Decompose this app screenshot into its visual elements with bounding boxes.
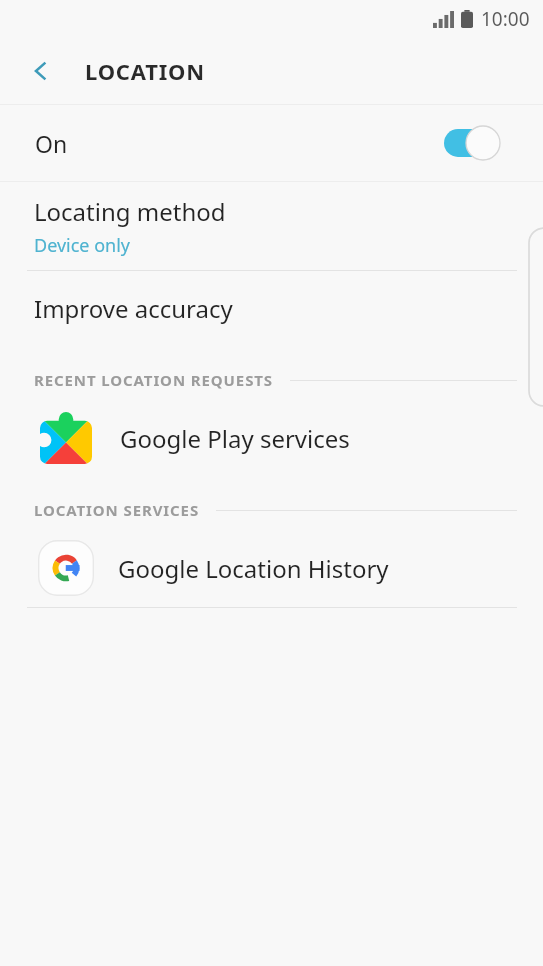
button[interactable]: Navigate up <box>16 46 66 96</box>
staticText: Google Play services <box>120 422 350 455</box>
button[interactable]: Locating method <box>0 182 543 270</box>
staticText: Google Location History <box>118 552 389 585</box>
staticText: RECENT LOCATION REQUESTS <box>34 370 274 390</box>
staticText: 10:00 <box>481 6 530 32</box>
button[interactable]: Google Play services <box>0 399 543 477</box>
staticText: LOCATION <box>85 56 206 86</box>
button[interactable]: On <box>0 105 543 181</box>
staticText: Improve accuracy <box>34 292 233 325</box>
staticText: Device only <box>34 233 131 258</box>
button[interactable]: Google Location History <box>0 529 543 607</box>
staticText: On <box>35 128 68 159</box>
button[interactable]: Improve accuracy <box>0 271 543 345</box>
staticText: LOCATION SERVICES <box>34 500 200 520</box>
staticText: Locating method <box>34 195 226 228</box>
